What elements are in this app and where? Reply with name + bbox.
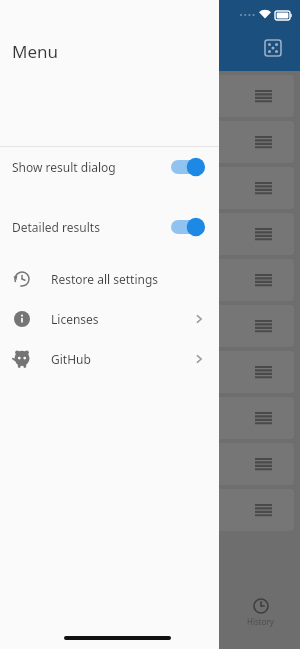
button[interactable] [6,167,294,209]
button[interactable] [6,351,294,393]
staticText: Menu [12,40,59,63]
button[interactable]: Roll dice [256,31,290,65]
button[interactable]: GitHub [0,339,219,379]
button[interactable] [6,121,294,163]
button[interactable] [6,443,294,485]
button[interactable] [6,75,294,117]
staticText: Licenses [51,311,99,327]
button[interactable] [6,489,294,531]
button[interactable] [6,259,294,301]
button[interactable] [6,397,294,439]
staticText: GitHub [51,351,91,367]
button[interactable] [6,213,294,255]
button[interactable]: Restore all settings [0,259,219,299]
button[interactable]: Licenses [0,299,219,339]
staticText: History [247,616,274,627]
staticText: Detailed results [12,219,100,235]
staticText: Restore all settings [51,271,159,287]
button[interactable]: Detailed results [0,207,219,247]
button[interactable]: Show result dialog [0,147,219,187]
button[interactable] [6,305,294,347]
staticText: Show result dialog [12,159,116,175]
button[interactable]: History [247,598,274,627]
